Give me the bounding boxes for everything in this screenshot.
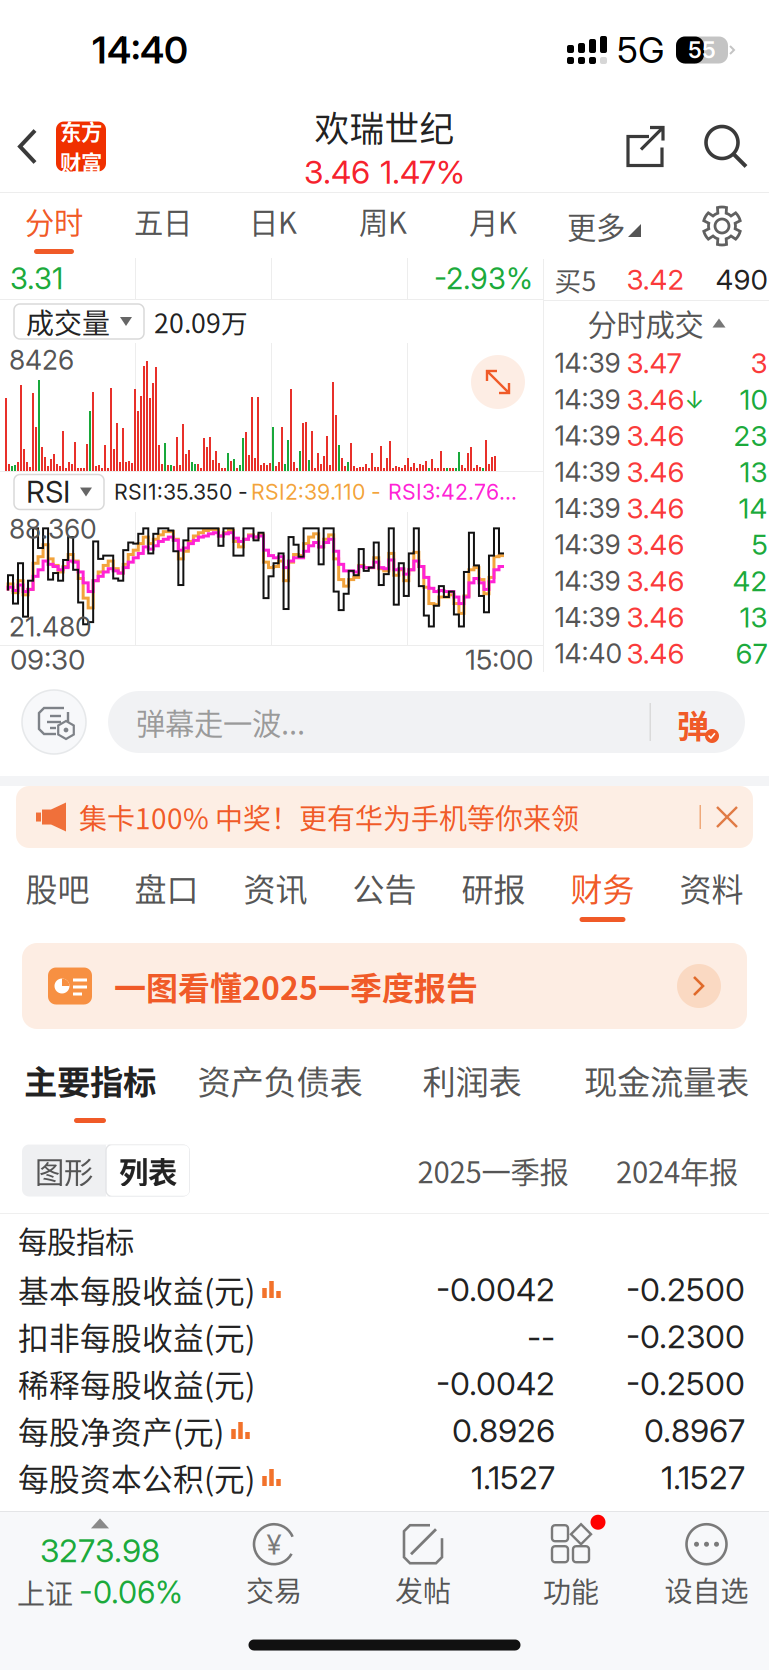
staticText: 功能 xyxy=(543,1570,599,1611)
staticText: 每股净资产(元) xyxy=(18,1408,224,1453)
button[interactable]: 3273.98 xyxy=(0,1511,200,1620)
staticText: 3.46 xyxy=(626,382,684,416)
staticText: 每股资本公积(元) xyxy=(18,1455,255,1500)
staticText: 一图看懂2025一季度报告 xyxy=(114,963,478,1009)
button[interactable]: 功能 xyxy=(498,1511,644,1620)
staticText: 分时成交 xyxy=(587,302,703,344)
staticText: 3273.98 xyxy=(40,1531,160,1570)
button[interactable]: 集卡100% 中奖！更有华为手机等你来领 xyxy=(16,786,753,848)
button[interactable]: 现金流量表 xyxy=(564,1042,769,1128)
button[interactable]: 弹幕走一波... xyxy=(108,691,745,753)
staticText: 3.42 xyxy=(626,263,684,296)
button[interactable]: RSI xyxy=(14,474,104,509)
staticText: 更多 xyxy=(567,205,625,247)
staticText: ¥ xyxy=(266,1527,281,1561)
button[interactable]: Danmaku settings xyxy=(22,690,86,754)
button[interactable]: Share xyxy=(607,100,683,193)
staticText: 利润表 xyxy=(422,1056,521,1104)
staticText: 资讯 xyxy=(243,864,307,911)
staticText: 88.360 xyxy=(9,513,97,545)
staticText: 3.47 xyxy=(626,346,681,380)
staticText: 09:30 xyxy=(10,643,85,676)
staticText: 日K xyxy=(249,200,297,242)
button[interactable]: 更多 xyxy=(548,193,660,259)
staticText: 1.1527 xyxy=(661,1458,745,1497)
button[interactable]: 股吧 xyxy=(3,858,112,928)
staticText: 弹 xyxy=(677,701,709,747)
button[interactable]: 一图看懂2025一季度报告 xyxy=(22,943,747,1029)
staticText: 42 xyxy=(732,564,767,598)
staticText: 主要指标 xyxy=(24,1056,156,1104)
staticText: 基本每股收益(元) xyxy=(18,1267,255,1312)
button[interactable]: 资产负债表 xyxy=(180,1042,380,1128)
button[interactable]: Expand chart xyxy=(471,355,525,409)
button[interactable]: 主要指标 xyxy=(0,1042,180,1128)
button[interactable]: 五日 xyxy=(108,193,218,259)
staticText: 3.46 xyxy=(304,153,370,191)
staticText: 3.46 xyxy=(626,491,684,525)
staticText: 分时 xyxy=(25,200,83,242)
button[interactable]: 周K xyxy=(328,193,438,259)
staticText: 14:40 xyxy=(92,27,188,73)
staticText: 5G xyxy=(617,28,664,72)
staticText: 14:39 xyxy=(554,347,620,379)
button[interactable]: 2025一季报 xyxy=(396,1143,590,1197)
button[interactable]: 2024年报 xyxy=(590,1143,764,1197)
staticText: RSI2:39.110 - xyxy=(251,479,381,505)
staticText: 3.31 xyxy=(10,261,63,296)
staticText: 2025一季报 xyxy=(417,1149,568,1192)
button[interactable]: Close xyxy=(701,786,753,848)
staticText: 3 xyxy=(750,346,767,380)
staticText: -0.2500 xyxy=(626,1270,745,1309)
button[interactable]: 设自选 xyxy=(644,1511,769,1620)
staticText: 五日 xyxy=(134,200,192,242)
staticText: 每股指标 xyxy=(18,1219,134,1261)
staticText: 15:00 xyxy=(465,643,533,676)
button[interactable]: 分时成交 xyxy=(544,301,769,345)
staticText: 10 xyxy=(739,382,767,416)
staticText: 13 xyxy=(739,600,767,634)
button[interactable]: 盘口 xyxy=(112,858,221,928)
staticText: 成交量 xyxy=(26,301,110,342)
staticText: 14:39 xyxy=(554,528,620,561)
button[interactable]: 发帖 xyxy=(348,1511,498,1620)
button[interactable]: Back xyxy=(0,100,56,193)
staticText: 1.47% xyxy=(380,153,465,191)
staticText: 盘口 xyxy=(134,864,198,911)
button[interactable]: 研报 xyxy=(439,858,548,928)
staticText: 14:39 xyxy=(554,492,620,524)
staticText: 月K xyxy=(469,200,517,242)
button[interactable]: 图形 xyxy=(22,1144,106,1196)
staticText: 上证 xyxy=(17,1572,73,1613)
staticText: 交易 xyxy=(246,1569,302,1610)
button[interactable]: 月K xyxy=(438,193,548,259)
staticText: -0.2300 xyxy=(626,1317,745,1356)
button[interactable]: 财务 xyxy=(548,858,657,928)
button[interactable]: 成交量 xyxy=(14,304,144,339)
button[interactable]: 日K xyxy=(218,193,328,259)
button[interactable]: Search xyxy=(683,100,769,193)
staticText: RSI3:42.760 - xyxy=(388,479,525,505)
button[interactable]: 资料 xyxy=(657,858,766,928)
staticText: 23 xyxy=(733,419,767,453)
button[interactable]: 列表 xyxy=(106,1144,190,1196)
staticText: 公告 xyxy=(352,864,416,911)
staticText: 3.46 xyxy=(626,600,684,634)
staticText: 资料 xyxy=(679,864,743,911)
button[interactable]: 分时 xyxy=(0,193,108,259)
button[interactable]: 利润表 xyxy=(380,1042,564,1128)
staticText: 弹幕走一波... xyxy=(136,701,305,743)
staticText: RSI xyxy=(26,474,70,510)
staticText: 14:39 xyxy=(554,383,620,416)
button[interactable]: 公告 xyxy=(330,858,439,928)
staticText: RSI1:35.350 - xyxy=(114,479,248,505)
button[interactable]: Settings xyxy=(675,193,769,259)
staticText: 55 xyxy=(688,36,716,64)
button[interactable]: 资讯 xyxy=(221,858,330,928)
staticText: 设自选 xyxy=(664,1569,748,1610)
button[interactable]: ¥ xyxy=(200,1511,348,1620)
staticText: -0.2500 xyxy=(626,1364,745,1403)
staticText: -- xyxy=(527,1317,555,1356)
staticText: 1.1527 xyxy=(471,1458,555,1497)
staticText: 资产负债表 xyxy=(197,1056,362,1104)
